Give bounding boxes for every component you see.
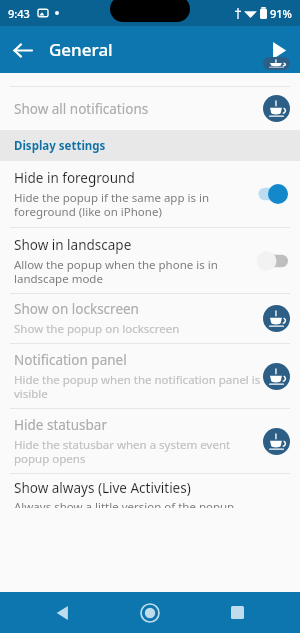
staticText: 9:43: [8, 6, 30, 21]
staticText: Hide the popup if the same app is in for…: [14, 190, 210, 219]
button[interactable]: Recents: [213, 592, 261, 633]
staticText: Show the popup on lockscreen: [14, 321, 180, 337]
button[interactable]: Hide in foreground: [0, 161, 300, 227]
button[interactable]: Pro feature: [263, 363, 290, 390]
staticText: Always show a little version of the popu…: [14, 499, 235, 508]
button[interactable]: Pro feature: [263, 305, 290, 332]
staticText: Hide the popup when the notification pan…: [14, 372, 261, 401]
staticText: 91%: [270, 6, 292, 21]
staticText: Hide statusbar: [14, 416, 107, 434]
button[interactable]: Notification panel: [0, 344, 300, 408]
staticText: Show always (Live Activities): [14, 479, 191, 497]
button[interactable]: Show on lockscreen: [0, 294, 300, 343]
button[interactable]: Show all notifications: [0, 87, 300, 130]
staticText: Show all notifications: [14, 100, 149, 118]
button[interactable]: Play: [256, 28, 300, 72]
button[interactable]: Show always (Live Activities): [0, 474, 300, 508]
staticText: Allow the popup when the phone is in lan…: [14, 257, 218, 286]
staticText: Notification panel: [14, 351, 127, 369]
staticText: Show on lockscreen: [14, 300, 139, 318]
staticText: Display settings: [14, 138, 106, 154]
button[interactable]: Back: [0, 28, 44, 72]
button[interactable]: Pro feature: [263, 95, 290, 122]
button[interactable]: Home: [126, 592, 174, 633]
staticText: General: [49, 38, 113, 61]
staticText: Hide in foreground: [14, 169, 135, 187]
button[interactable]: Pro feature: [263, 57, 290, 70]
staticText: Hide the statusbar when a system event p…: [14, 437, 231, 466]
button[interactable]: Back: [39, 592, 87, 633]
button[interactable]: Hide statusbar: [0, 409, 300, 473]
button[interactable]: Pro feature: [263, 428, 290, 455]
button[interactable]: Show in landscape: [0, 228, 300, 293]
staticText: Show in landscape: [14, 236, 132, 254]
